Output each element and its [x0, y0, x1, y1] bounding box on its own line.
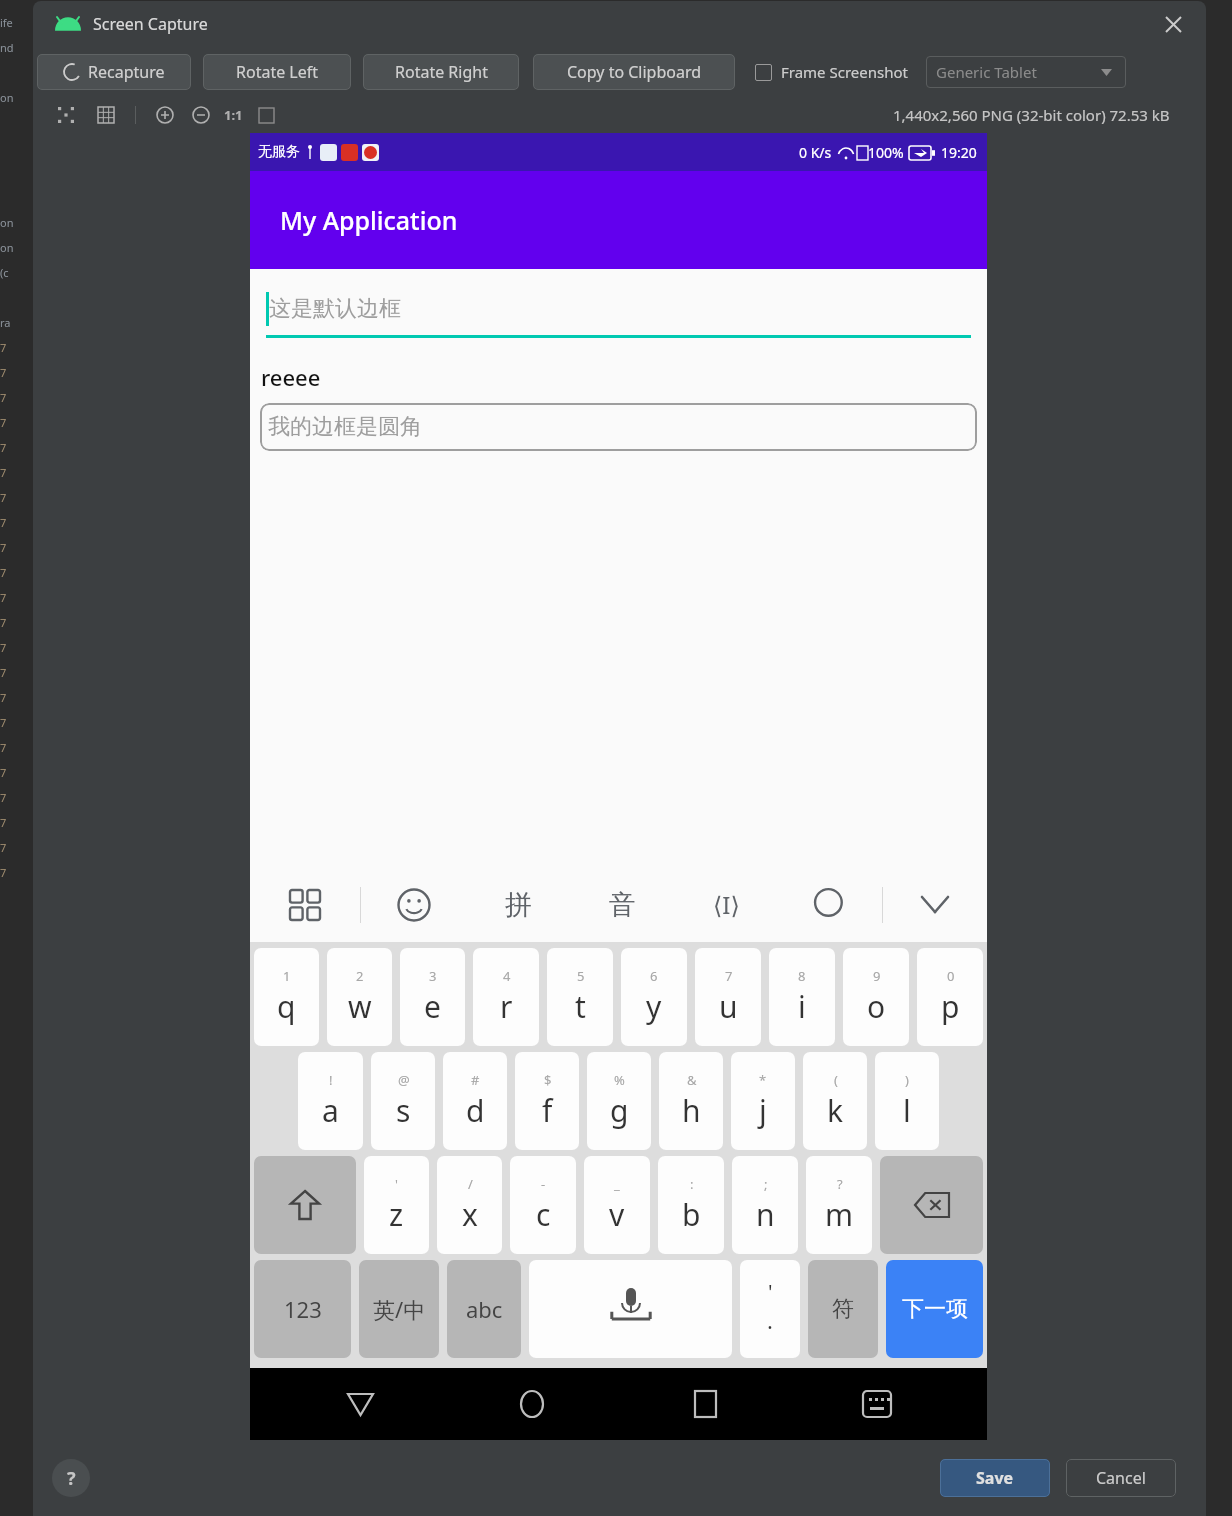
- button[interactable]: Keyboard menu: [250, 867, 360, 942]
- button[interactable]: &: [659, 1052, 723, 1150]
- button[interactable]: 4: [473, 948, 539, 1046]
- button[interactable]: Copy to Clipboard: [533, 54, 735, 90]
- button[interactable]: Zoom out: [188, 102, 214, 128]
- button[interactable]: Backspace: [880, 1156, 983, 1254]
- button[interactable]: Hide keyboard: [883, 867, 987, 942]
- button[interactable]: ): [875, 1052, 939, 1150]
- staticText: 7: [0, 415, 7, 430]
- button[interactable]: Recents: [675, 1374, 735, 1434]
- staticText: o: [867, 986, 886, 1027]
- staticText: u: [719, 986, 738, 1027]
- staticText: 音: [609, 888, 636, 922]
- staticText: ?: [67, 1466, 76, 1491]
- staticText: 符: [832, 1295, 854, 1323]
- button[interactable]: :: [658, 1156, 724, 1254]
- button[interactable]: 8: [769, 948, 835, 1046]
- button[interactable]: 7: [695, 948, 761, 1046]
- button[interactable]: 我的边框是圆角: [260, 403, 977, 451]
- button[interactable]: 音: [570, 867, 674, 942]
- button[interactable]: Help: [52, 1459, 90, 1497]
- button[interactable]: %: [587, 1052, 651, 1150]
- button[interactable]: Rotate Left: [203, 54, 351, 90]
- button[interactable]: ;: [732, 1156, 798, 1254]
- button[interactable]: Keyboard: [847, 1374, 907, 1434]
- button[interactable]: Space: [529, 1260, 732, 1358]
- button[interactable]: abc: [447, 1260, 521, 1358]
- staticText: Rotate Right: [395, 61, 488, 83]
- button[interactable]: Emoji: [361, 867, 466, 942]
- button[interactable]: 3: [400, 948, 465, 1046]
- button[interactable]: Search: [778, 867, 882, 942]
- staticText: 拼: [505, 888, 532, 922]
- button[interactable]: $: [515, 1052, 579, 1150]
- button[interactable]: Fit: [53, 102, 79, 128]
- button[interactable]: _: [584, 1156, 650, 1254]
- staticText: $: [544, 1071, 552, 1089]
- staticText: 0: [947, 967, 955, 985]
- button[interactable]: (: [803, 1052, 867, 1150]
- staticText: 123: [284, 1294, 322, 1324]
- button[interactable]: ': [740, 1260, 800, 1358]
- button[interactable]: Save: [940, 1459, 1050, 1497]
- button[interactable]: Shift: [254, 1156, 356, 1254]
- button[interactable]: Rotate Right: [363, 54, 519, 90]
- staticText: 7: [725, 967, 733, 985]
- button[interactable]: 1: [254, 948, 319, 1046]
- button[interactable]: 这是默认边框: [266, 292, 971, 338]
- button[interactable]: Grid: [93, 102, 119, 128]
- staticText: 4: [503, 967, 511, 985]
- button[interactable]: 下一项: [886, 1260, 983, 1358]
- staticText: 7: [0, 815, 7, 830]
- button[interactable]: Recapture: [37, 54, 191, 90]
- button[interactable]: /: [437, 1156, 502, 1254]
- staticText: 下一项: [902, 1295, 968, 1323]
- button[interactable]: 123: [254, 1260, 351, 1358]
- staticText: 7: [0, 440, 7, 455]
- button[interactable]: Back: [330, 1374, 390, 1434]
- button[interactable]: ?: [806, 1156, 872, 1254]
- button[interactable]: @: [371, 1052, 435, 1150]
- staticText: (: [834, 1071, 838, 1089]
- staticText: j: [759, 1090, 767, 1131]
- button[interactable]: ': [364, 1156, 429, 1254]
- button[interactable]: 英/中: [359, 1260, 439, 1358]
- button[interactable]: Zoom in: [152, 102, 178, 128]
- staticText: g: [610, 1090, 629, 1131]
- staticText: on: [0, 90, 14, 105]
- staticText: 7: [0, 515, 7, 530]
- staticText: on: [0, 240, 14, 255]
- button[interactable]: 2: [327, 948, 392, 1046]
- button[interactable]: Close: [1156, 7, 1190, 41]
- button[interactable]: Cursor: [674, 867, 778, 942]
- button[interactable]: Generic Tablet: [926, 56, 1126, 88]
- button[interactable]: 符: [808, 1260, 878, 1358]
- button[interactable]: 0: [917, 948, 983, 1046]
- button[interactable]: -: [510, 1156, 576, 1254]
- button[interactable]: 6: [621, 948, 687, 1046]
- button[interactable]: Frame Screenshot: [755, 62, 908, 82]
- staticText: 7: [0, 540, 7, 555]
- staticText: 3: [429, 967, 437, 985]
- staticText: 7: [0, 840, 7, 855]
- button[interactable]: Home: [502, 1374, 562, 1434]
- staticText: 5: [577, 967, 585, 985]
- button[interactable]: *: [731, 1052, 795, 1150]
- button[interactable]: 拼: [466, 867, 570, 942]
- button[interactable]: 9: [843, 948, 909, 1046]
- staticText: b: [682, 1194, 701, 1235]
- button[interactable]: !: [298, 1052, 363, 1150]
- button[interactable]: 1:1: [224, 106, 243, 124]
- staticText: Frame Screenshot: [781, 62, 908, 82]
- button[interactable]: Actual size: [255, 104, 277, 126]
- button[interactable]: Cancel: [1066, 1459, 1176, 1497]
- staticText: t: [575, 986, 586, 1027]
- button[interactable]: 5: [547, 948, 613, 1046]
- staticText: Screen Capture: [93, 13, 208, 35]
- staticText: c: [536, 1194, 551, 1235]
- button[interactable]: #: [443, 1052, 507, 1150]
- staticText: 7: [0, 715, 7, 730]
- staticText: 2: [356, 967, 364, 985]
- staticText: i: [798, 986, 806, 1027]
